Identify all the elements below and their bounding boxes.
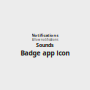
staticText: Sounds [36, 41, 54, 49]
staticText: Allow notifications [32, 38, 58, 41]
staticText: Notifications [31, 33, 58, 38]
staticText: Badge app icon [20, 48, 69, 57]
